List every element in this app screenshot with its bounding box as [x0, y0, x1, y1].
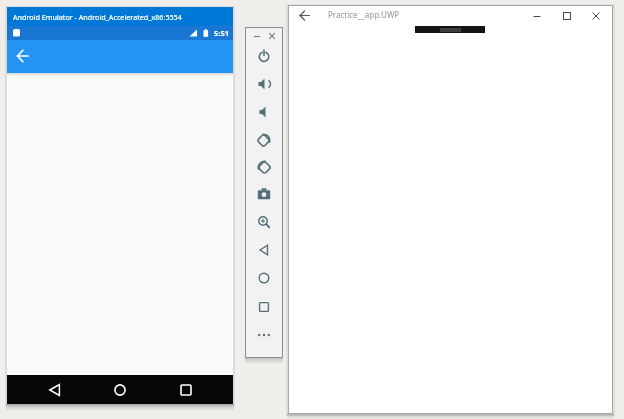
button[interactable]: [253, 183, 275, 205]
button[interactable]: [7, 40, 39, 72]
button[interactable]: [253, 324, 275, 346]
button[interactable]: [253, 239, 275, 261]
button[interactable]: [253, 296, 275, 318]
button[interactable]: [526, 8, 548, 24]
button[interactable]: [175, 378, 196, 401]
button[interactable]: [44, 378, 65, 401]
button[interactable]: [253, 45, 275, 67]
button[interactable]: [556, 8, 578, 24]
staticText: 5:51: [214, 28, 229, 38]
button[interactable]: [415, 26, 485, 33]
button[interactable]: [250, 29, 263, 42]
button[interactable]: [253, 211, 275, 233]
button[interactable]: [253, 101, 275, 123]
button[interactable]: [265, 29, 278, 42]
button[interactable]: [253, 156, 275, 178]
staticText: Practice__app.UWP: [328, 9, 400, 20]
button[interactable]: [109, 378, 130, 401]
button[interactable]: [253, 129, 275, 151]
button[interactable]: [253, 267, 275, 289]
staticText: Android Emulator - Android_Accelerated_x…: [13, 12, 182, 22]
button[interactable]: [585, 8, 607, 24]
button[interactable]: [294, 5, 315, 26]
button[interactable]: [253, 73, 275, 95]
